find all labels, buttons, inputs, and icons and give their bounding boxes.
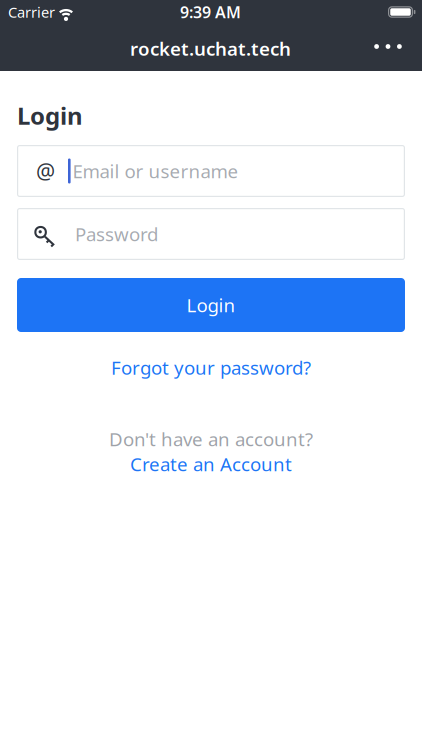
staticText: Login <box>186 293 235 317</box>
staticText: Email or username <box>73 159 239 183</box>
staticText: Carrier <box>8 2 55 22</box>
button[interactable] <box>366 29 410 63</box>
button[interactable]: Forgot your password? <box>111 355 311 379</box>
staticText: Don't have an account? <box>109 427 313 451</box>
staticText: Create an Account <box>130 452 292 476</box>
button[interactable]: Login <box>17 278 405 332</box>
staticText: Login <box>17 100 83 131</box>
staticText: 9:39 AM <box>180 1 241 23</box>
staticText: @ <box>36 157 55 185</box>
button[interactable]: @ <box>17 145 405 197</box>
staticText: Password <box>75 222 158 246</box>
button[interactable]: Create an Account <box>130 452 292 476</box>
staticText: Forgot your password? <box>111 355 311 380</box>
button[interactable]: Password <box>17 208 405 260</box>
staticText: rocket.uchat.tech <box>130 36 291 61</box>
